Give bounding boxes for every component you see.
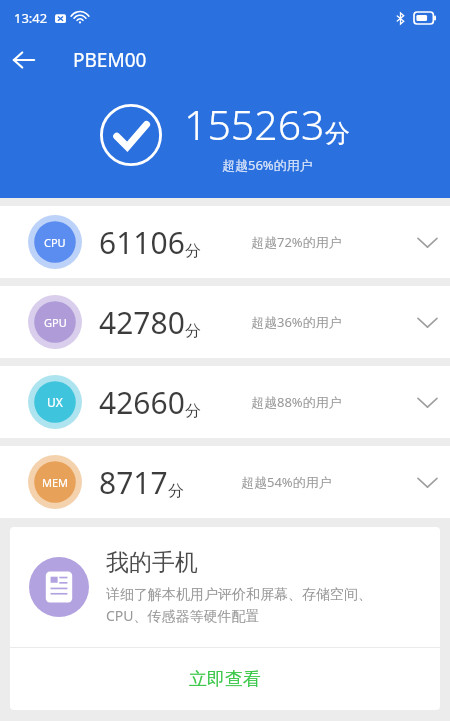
- staticText: 分: [185, 321, 201, 341]
- staticText: 超越72%的用户: [251, 233, 342, 251]
- staticText: 61106: [99, 222, 185, 263]
- staticText: 分: [325, 118, 350, 149]
- staticText: 分: [185, 241, 201, 261]
- button[interactable]: Expand MEM: [404, 459, 450, 505]
- staticText: 超越56%的用户: [222, 156, 313, 174]
- staticText: 超越36%的用户: [251, 313, 342, 331]
- staticText: 42780: [99, 302, 185, 343]
- button[interactable]: CPU: [0, 206, 450, 278]
- button[interactable]: Expand CPU: [404, 219, 450, 265]
- button[interactable]: 我的手机: [10, 527, 440, 710]
- staticText: GPU: [44, 315, 67, 330]
- staticText: MEM: [42, 475, 69, 490]
- staticText: 分: [168, 481, 184, 501]
- staticText: 详细了解本机用户评价和屏幕、存储空间、 CPU、传感器等硬件配置: [106, 586, 372, 626]
- staticText: 8717: [99, 462, 168, 503]
- staticText: CPU: [44, 235, 66, 250]
- staticText: 155263: [184, 96, 325, 152]
- button[interactable]: Expand UX: [404, 379, 450, 425]
- staticText: 我的手机: [106, 548, 198, 577]
- button[interactable]: UX: [0, 366, 450, 438]
- button[interactable]: Expand GPU: [404, 299, 450, 345]
- staticText: UX: [47, 394, 63, 410]
- staticText: 超越88%的用户: [251, 393, 342, 411]
- button[interactable]: MEM: [0, 446, 450, 518]
- staticText: 13:42: [14, 9, 48, 27]
- staticText: 立即查看: [189, 668, 261, 691]
- staticText: 超越54%的用户: [241, 473, 332, 491]
- button[interactable]: GPU: [0, 286, 450, 358]
- button[interactable]: Back: [0, 36, 48, 84]
- staticText: PBEM00: [73, 47, 147, 73]
- staticText: 42660: [99, 382, 185, 423]
- staticText: 分: [185, 401, 201, 421]
- button[interactable]: 立即查看: [10, 648, 440, 710]
